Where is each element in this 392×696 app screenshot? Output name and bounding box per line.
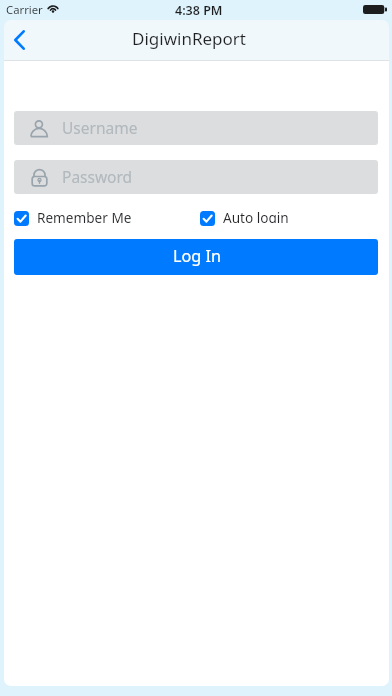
staticText: Remember Me: [37, 208, 132, 223]
button[interactable]: Password: [14, 160, 378, 194]
button[interactable]: Username: [14, 111, 378, 145]
button[interactable]: Back: [4, 20, 40, 60]
staticText: DigiwinReport: [132, 27, 246, 50]
button[interactable]: Remember Me: [14, 211, 132, 226]
button[interactable]: Log In: [14, 239, 378, 275]
staticText: Log In: [173, 245, 221, 267]
staticText: Auto login: [223, 208, 289, 223]
staticText: Username: [62, 117, 138, 138]
staticText: Carrier: [6, 2, 43, 17]
staticText: 4:38 PM: [175, 2, 223, 19]
staticText: Password: [62, 166, 133, 187]
button[interactable]: Auto login: [200, 211, 289, 226]
